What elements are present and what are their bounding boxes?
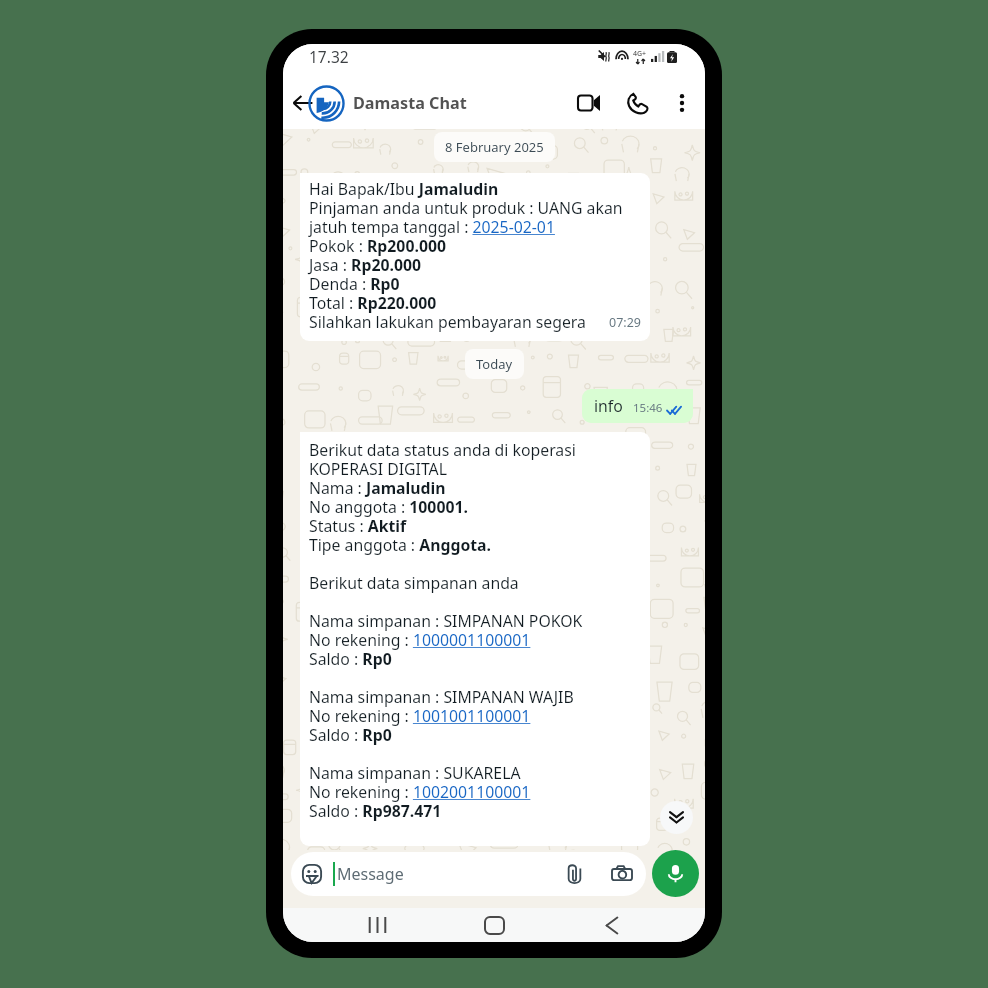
staticText: Damasta Chat — [353, 92, 579, 114]
button[interactable]: Home — [469, 908, 519, 942]
button[interactable]: More options — [669, 90, 695, 116]
staticText: 8 February 2025 — [445, 138, 544, 156]
button[interactable]: Video call — [572, 86, 606, 120]
button[interactable]: Recent apps — [352, 908, 402, 942]
staticText: Today — [476, 355, 513, 373]
staticText: 4G+ — [633, 49, 647, 59]
staticText: 15:46 — [633, 400, 663, 416]
staticText: 17.32 — [309, 46, 349, 67]
button[interactable]: Voice message — [652, 850, 699, 897]
button[interactable]: Emoji — [291, 852, 646, 896]
button[interactable]: Emoji — [300, 862, 324, 886]
staticText: Hai Bapak/Ibu Jamaludin Pinjaman anda un… — [309, 178, 623, 332]
button[interactable]: Back — [586, 908, 636, 942]
staticText: 07:29 — [609, 314, 641, 331]
staticText: Berikut data status anda di koperasi KOP… — [309, 439, 583, 840]
staticText: info — [594, 395, 623, 417]
button[interactable]: Call — [622, 88, 652, 118]
button[interactable]: Camera — [609, 861, 635, 887]
button[interactable]: Back — [289, 89, 317, 117]
button[interactable]: Attach — [561, 861, 587, 887]
button[interactable]: info — [582, 389, 693, 423]
button[interactable]: Scroll to bottom — [660, 801, 693, 834]
staticText: Message — [337, 863, 404, 885]
button[interactable]: Hai Bapak/Ibu Jamaludin Pinjaman anda un… — [300, 173, 650, 341]
button[interactable]: Berikut data status anda di koperasi KOP… — [300, 432, 650, 846]
